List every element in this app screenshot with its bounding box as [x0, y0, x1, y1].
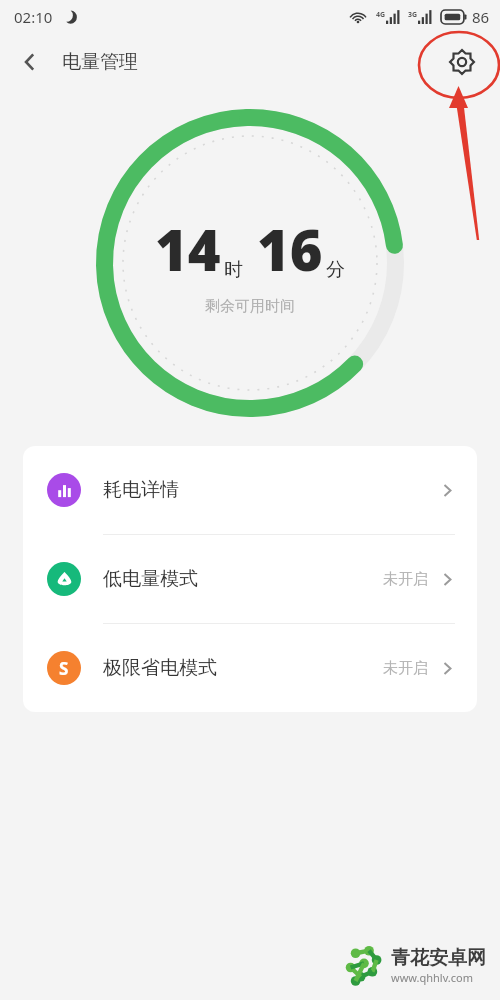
staticText: 剩余可用时间: [205, 297, 295, 316]
button[interactable]: 低电量模式: [23, 535, 477, 623]
staticText: 青花安卓网: [391, 946, 486, 970]
staticText: www.qhhlv.com: [391, 970, 473, 985]
staticText: 未开启: [383, 570, 428, 589]
staticText: 低电量模式: [103, 567, 198, 591]
staticText: 电量管理: [62, 50, 138, 74]
staticText: 3G: [408, 10, 418, 20]
button[interactable]: S: [23, 624, 477, 712]
staticText: 02:10: [14, 7, 53, 27]
staticText: 分: [326, 258, 345, 282]
staticText: 14: [155, 211, 221, 287]
staticText: 未开启: [383, 659, 428, 678]
button[interactable]: Settings: [440, 40, 484, 84]
staticText: 时: [224, 258, 243, 282]
staticText: S: [59, 657, 69, 680]
staticText: 86: [472, 7, 490, 27]
button[interactable]: Back: [6, 38, 54, 86]
staticText: 16: [257, 211, 323, 287]
staticText: 极限省电模式: [103, 656, 217, 680]
button[interactable]: 耗电详情: [23, 446, 477, 534]
staticText: 4G: [376, 10, 386, 20]
staticText: 耗电详情: [103, 478, 179, 502]
